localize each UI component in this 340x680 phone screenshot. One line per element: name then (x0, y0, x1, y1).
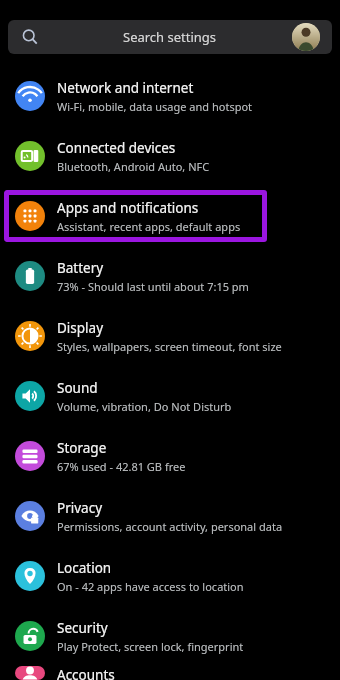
staticText: Security (57, 619, 108, 637)
staticText: Wi-Fi, mobile, data usage and hotspot (57, 99, 253, 114)
staticText: Accounts (57, 666, 115, 680)
staticText: Play Protect, screen lock, fingerprint (57, 639, 244, 654)
staticText: Bluetooth, Android Auto, NFC (57, 159, 210, 174)
staticText: 67% used - 42.81 GB free (57, 459, 186, 474)
staticText: Display (57, 319, 104, 337)
button[interactable]: Search settings (8, 20, 332, 54)
staticText: Volume, vibration, Do Not Disturb (57, 399, 232, 414)
staticText: Network and internet (57, 79, 194, 97)
staticText: Connected devices (57, 139, 176, 157)
button[interactable]: Display (0, 306, 340, 366)
button[interactable]: Accounts (0, 666, 340, 680)
staticText: On - 42 apps have access to location (57, 579, 244, 594)
staticText: Location (57, 559, 112, 577)
staticText: Sound (57, 379, 98, 397)
button[interactable]: Security (0, 606, 340, 666)
button[interactable]: Privacy (0, 486, 340, 546)
staticText: Privacy (57, 499, 103, 517)
button[interactable]: Location (0, 546, 340, 606)
button[interactable]: Sound (0, 366, 340, 426)
button[interactable]: Battery (0, 246, 340, 306)
button[interactable]: Network and internet (0, 66, 340, 126)
button[interactable]: Apps and notifications (0, 186, 340, 246)
button[interactable]: Storage (0, 426, 340, 486)
staticText: Permissions, account activity, personal … (57, 519, 283, 534)
staticText: 73% - Should last until about 7:15 pm (57, 279, 249, 294)
button[interactable]: Connected devices (0, 126, 340, 186)
staticText: Battery (57, 259, 104, 277)
staticText: Apps and notifications (57, 199, 199, 217)
other: Search (22, 29, 38, 45)
button[interactable]: Account (292, 23, 320, 51)
staticText: Assistant, recent apps, default apps (57, 219, 241, 234)
staticText: Search settings (123, 28, 217, 46)
staticText: Storage (57, 439, 107, 457)
staticText: Styles, wallpapers, screen timeout, font… (57, 339, 282, 354)
